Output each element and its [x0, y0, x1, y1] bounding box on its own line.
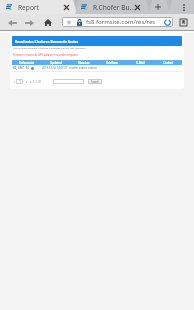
staticText: Presione el icono de GPS para ver recorr…	[13, 53, 78, 57]
button[interactable]: Previous page	[13, 79, 17, 85]
staticText: ▸ 1-1 (1)	[30, 80, 41, 84]
button[interactable]: New tab	[150, 0, 166, 14]
staticText: 8801-94	[18, 66, 29, 70]
button[interactable]: Next page	[25, 79, 29, 85]
staticText: E-Mail	[136, 61, 145, 65]
staticText: Report	[18, 3, 39, 12]
button[interactable]: 1	[16, 79, 23, 84]
button[interactable]: Close tab	[133, 3, 142, 12]
staticText: Referencia	[19, 61, 34, 65]
button[interactable]: Forward	[23, 15, 36, 30]
staticText: (Con los datos desplaza la derecha o izq…	[13, 47, 87, 50]
staticText: cesefer suarez cuenca	[69, 66, 97, 70]
button[interactable]: Updated	[41, 60, 70, 65]
staticText: ‹	[14, 79, 16, 85]
staticText: Resultados Choferes Buscando Socios	[15, 39, 79, 44]
staticText: Nombre	[78, 61, 90, 65]
button[interactable]: Menu	[177, 0, 190, 14]
button[interactable]: Home	[41, 15, 54, 30]
button[interactable]: Bookmarks	[177, 16, 189, 28]
staticText: ›	[26, 79, 28, 85]
staticText: Updated	[50, 61, 62, 65]
staticText: 2019-12-02 14:07:07	[42, 66, 68, 70]
button[interactable]: Report	[5, 0, 71, 14]
button[interactable]: E-Mail	[126, 60, 154, 65]
button[interactable]: Ciudad	[154, 60, 182, 65]
button[interactable]: Back	[6, 15, 19, 30]
staticText: R.Chofer Bu...	[93, 3, 135, 12]
button[interactable]: Nombre	[70, 60, 98, 65]
button[interactable]: Search field	[53, 79, 84, 84]
button[interactable]: R.Chofer Bu...	[80, 0, 146, 14]
button[interactable]: Search	[88, 79, 102, 84]
staticText: 1	[19, 80, 21, 84]
staticText: Telefono	[106, 61, 118, 65]
staticText: fs8.formsite.com/res/res	[86, 18, 156, 26]
staticText: Ciudad	[163, 61, 173, 65]
button[interactable]: Close tab	[62, 3, 71, 12]
button[interactable]: fs8.formsite.com/res/res	[62, 17, 173, 27]
staticText: Search	[91, 80, 100, 84]
button[interactable]: Telefono	[98, 60, 126, 65]
button[interactable]: Referencia	[12, 60, 41, 65]
